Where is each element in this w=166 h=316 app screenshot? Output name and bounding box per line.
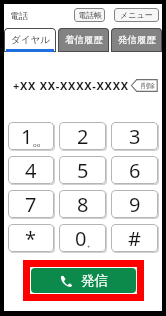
- button[interactable]: 発信履歴: [111, 28, 162, 52]
- button[interactable]: 8: [59, 190, 106, 218]
- button[interactable]: *: [8, 224, 54, 252]
- staticText: 3: [129, 123, 141, 150]
- button[interactable]: 7: [8, 190, 54, 218]
- staticText: 7: [25, 191, 37, 218]
- staticText: メニュー: [120, 10, 153, 20]
- staticText: #: [128, 225, 141, 252]
- staticText: +XX XX-XXXX-XXXX: [13, 78, 129, 93]
- button[interactable]: 1: [8, 122, 54, 150]
- staticText: 発信: [81, 272, 108, 289]
- button[interactable]: 5: [59, 156, 106, 184]
- staticText: +: [87, 243, 91, 251]
- staticText: 1: [21, 123, 33, 150]
- staticText: 発信履歴: [118, 34, 156, 46]
- button[interactable]: 6: [111, 156, 158, 184]
- staticText: 8: [77, 191, 89, 218]
- staticText: 4: [25, 157, 37, 184]
- button[interactable]: 9: [111, 190, 158, 218]
- staticText: 5: [77, 157, 89, 184]
- staticText: 0: [75, 225, 87, 252]
- button[interactable]: #: [111, 224, 158, 252]
- button[interactable]: 削除: [131, 79, 158, 92]
- staticText: 9: [129, 191, 141, 218]
- staticText: 着信履歴: [65, 34, 103, 46]
- button[interactable]: 0: [59, 224, 106, 252]
- staticText: 6: [129, 157, 141, 184]
- staticText: 削除: [141, 81, 155, 90]
- staticText: oo: [33, 141, 41, 149]
- button[interactable]: ダイヤル: [4, 28, 56, 52]
- button[interactable]: メニュー: [114, 8, 159, 22]
- staticText: 電話: [10, 10, 28, 21]
- button[interactable]: 電話帳: [74, 8, 105, 22]
- staticText: 2: [77, 123, 89, 150]
- staticText: ダイヤル: [11, 34, 50, 46]
- button[interactable]: 発信: [31, 268, 136, 293]
- staticText: *: [25, 225, 37, 252]
- button[interactable]: 4: [8, 156, 54, 184]
- staticText: 電話帳: [78, 10, 102, 20]
- button[interactable]: 3: [111, 122, 158, 150]
- button[interactable]: 着信履歴: [58, 28, 109, 52]
- button[interactable]: 2: [59, 122, 106, 150]
